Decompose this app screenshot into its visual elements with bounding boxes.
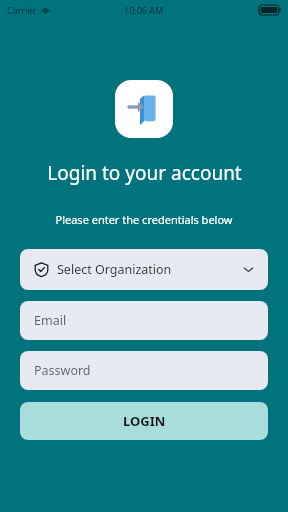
other: Login icon	[127, 92, 161, 126]
staticText: Carrier	[7, 4, 37, 16]
button[interactable]: Select Organization	[20, 249, 268, 290]
button[interactable]: Email	[20, 301, 268, 340]
other: Expand	[243, 264, 254, 275]
staticText: LOGIN	[123, 412, 166, 430]
staticText: Password	[34, 362, 91, 379]
staticText: Please enter the credentials below	[55, 212, 233, 227]
staticText: Email	[34, 312, 67, 329]
button[interactable]: LOGIN	[20, 402, 268, 440]
staticText: Login to your account	[47, 160, 242, 186]
button[interactable]: Password	[20, 351, 268, 390]
staticText: Select Organization	[57, 261, 172, 278]
staticText: 10:06 AM	[124, 4, 164, 16]
